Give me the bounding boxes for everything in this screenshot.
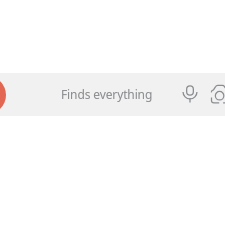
staticText: Finds everything: [61, 86, 153, 102]
button[interactable]: Voice search: [182, 85, 198, 103]
button[interactable]: Search: [0, 73, 225, 116]
button[interactable]: Account: [0, 76, 6, 114]
button[interactable]: Search with Lens: [209, 84, 225, 106]
